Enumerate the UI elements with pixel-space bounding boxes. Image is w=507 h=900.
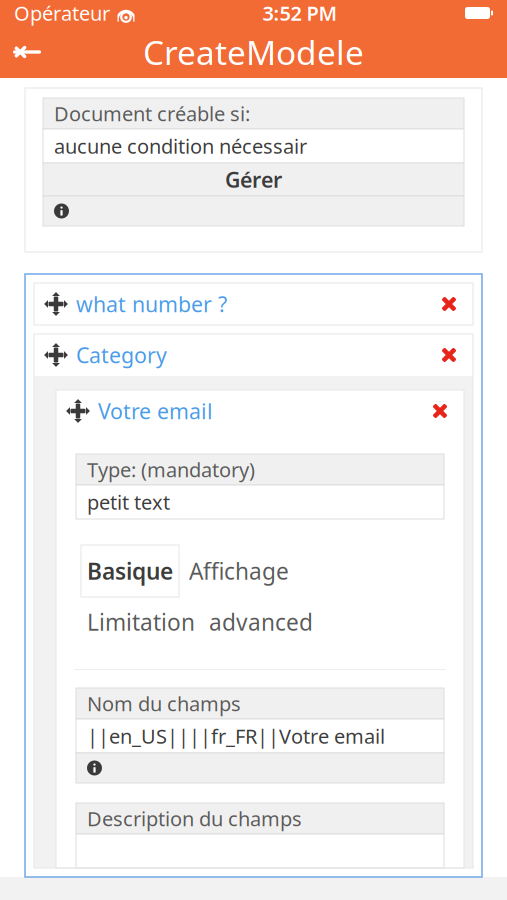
button[interactable]: Information bbox=[76, 753, 444, 783]
staticText: Description du champs bbox=[87, 805, 302, 832]
button[interactable]: Votre email bbox=[98, 397, 213, 425]
staticText: Basique bbox=[87, 556, 173, 586]
button[interactable]: advanced bbox=[201, 597, 321, 647]
button[interactable]: Delete what number ? bbox=[436, 291, 462, 317]
button[interactable]: Information bbox=[43, 196, 464, 226]
staticText: Document créable si: bbox=[54, 100, 250, 127]
staticText: advanced bbox=[209, 607, 313, 637]
button[interactable]: Limitation bbox=[81, 597, 201, 647]
staticText: Votre email bbox=[98, 397, 213, 425]
staticText: what number ? bbox=[76, 290, 227, 318]
button[interactable]: Reorder Category bbox=[45, 344, 67, 366]
staticText: Limitation bbox=[87, 607, 195, 637]
button[interactable]: Category bbox=[76, 341, 167, 369]
staticText: Type: (mandatory) bbox=[87, 456, 255, 483]
staticText: Affichage bbox=[189, 556, 289, 586]
button[interactable]: Delete Votre email bbox=[427, 398, 453, 424]
staticText: Category bbox=[76, 341, 167, 369]
staticText: ||en_US||||fr_FR||Votre email bbox=[87, 723, 385, 749]
staticText: aucune condition nécessair bbox=[54, 133, 307, 159]
staticText: Nom du champs bbox=[87, 690, 241, 717]
staticText: 3:52 PM bbox=[262, 0, 337, 26]
button[interactable]: what number ? bbox=[76, 290, 227, 318]
button[interactable]: Basique bbox=[81, 545, 179, 597]
staticText: Gérer bbox=[225, 165, 282, 194]
staticText: petit text bbox=[87, 489, 170, 515]
button[interactable]: Reorder Votre email bbox=[67, 400, 89, 422]
staticText: Opérateur bbox=[14, 0, 110, 26]
button[interactable]: Back bbox=[0, 26, 54, 78]
button[interactable]: Delete Category bbox=[436, 342, 462, 368]
button[interactable]: Affichage bbox=[179, 545, 299, 597]
staticText: CreateModele bbox=[143, 30, 364, 74]
button[interactable]: Gérer bbox=[43, 163, 464, 196]
button[interactable]: Reorder what number ? bbox=[45, 293, 67, 315]
